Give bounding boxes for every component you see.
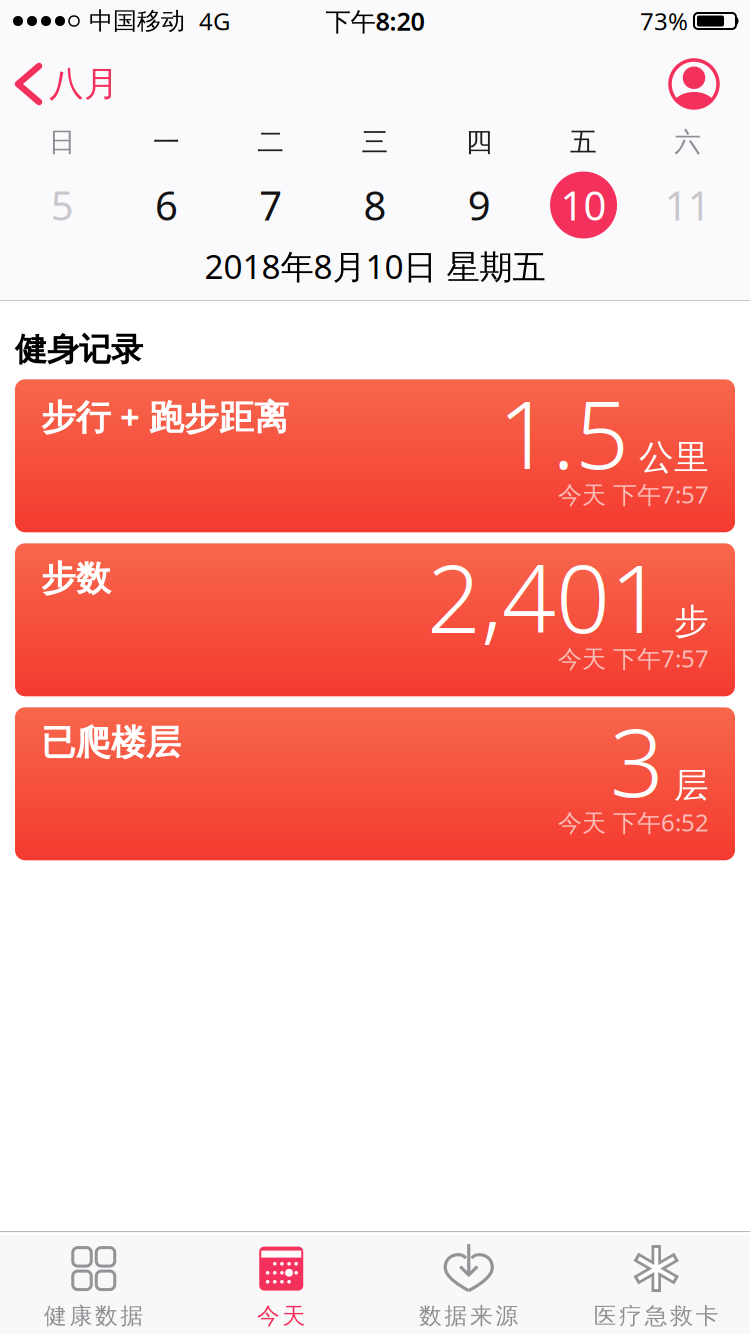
- staticText: 2018年8月10日 星期五: [204, 244, 545, 288]
- staticText: 4G: [199, 5, 230, 37]
- button[interactable]: [670, 60, 750, 108]
- button[interactable]: 11: [636, 178, 740, 231]
- button[interactable]: 今天: [187, 1245, 375, 1330]
- button[interactable]: 7: [219, 178, 323, 231]
- button[interactable]: 10: [531, 171, 636, 238]
- staticText: 层: [674, 764, 709, 807]
- staticText: 5: [51, 178, 74, 231]
- button[interactable]: 医疗急救卡: [562, 1245, 750, 1330]
- staticText: 今天 下午7:57: [558, 478, 709, 510]
- staticText: 10: [561, 178, 607, 231]
- staticText: 健身记录: [15, 330, 143, 369]
- staticText: 2,401: [427, 533, 664, 659]
- button[interactable]: 数据来源: [375, 1245, 562, 1330]
- staticText: 6: [155, 178, 178, 231]
- staticText: 7: [259, 178, 282, 231]
- staticText: 下午8:20: [325, 4, 424, 38]
- button[interactable]: 健康数据: [0, 1245, 187, 1330]
- staticText: 9: [468, 178, 491, 231]
- staticText: 今天 下午6:52: [558, 806, 709, 838]
- staticText: 步数: [41, 557, 111, 600]
- staticText: 3: [610, 697, 664, 823]
- staticText: 数据来源: [419, 1302, 518, 1330]
- staticText: 日: [49, 126, 76, 158]
- staticText: 步行 + 跑步距离: [41, 393, 289, 439]
- staticText: 三: [361, 126, 388, 158]
- button[interactable]: 9: [427, 178, 531, 231]
- staticText: 中国移动: [89, 6, 185, 36]
- staticText: 步: [674, 600, 709, 643]
- button[interactable]: 步行 + 跑步距离: [15, 379, 735, 532]
- staticText: 今天 下午7:57: [558, 642, 709, 674]
- button[interactable]: 8: [323, 178, 427, 231]
- staticText: 六: [674, 126, 701, 158]
- staticText: 8: [363, 178, 386, 231]
- staticText: 今天: [257, 1302, 305, 1330]
- staticText: 一: [153, 126, 180, 158]
- button[interactable]: 6: [114, 178, 219, 231]
- button[interactable]: 步数: [15, 543, 735, 696]
- staticText: 73%: [640, 5, 688, 37]
- button[interactable]: 八月: [0, 63, 119, 105]
- staticText: 五: [570, 126, 597, 158]
- staticText: 八月: [49, 63, 119, 105]
- staticText: 已爬楼层: [41, 721, 181, 764]
- button[interactable]: 已爬楼层: [15, 707, 735, 860]
- staticText: 公里: [639, 436, 709, 479]
- staticText: 1.5: [498, 369, 629, 495]
- staticText: 医疗急救卡: [594, 1302, 719, 1330]
- button[interactable]: 5: [10, 178, 114, 231]
- staticText: 四: [466, 126, 493, 158]
- staticText: 二: [257, 126, 284, 158]
- staticText: 健康数据: [44, 1302, 143, 1330]
- staticText: 11: [665, 178, 711, 231]
